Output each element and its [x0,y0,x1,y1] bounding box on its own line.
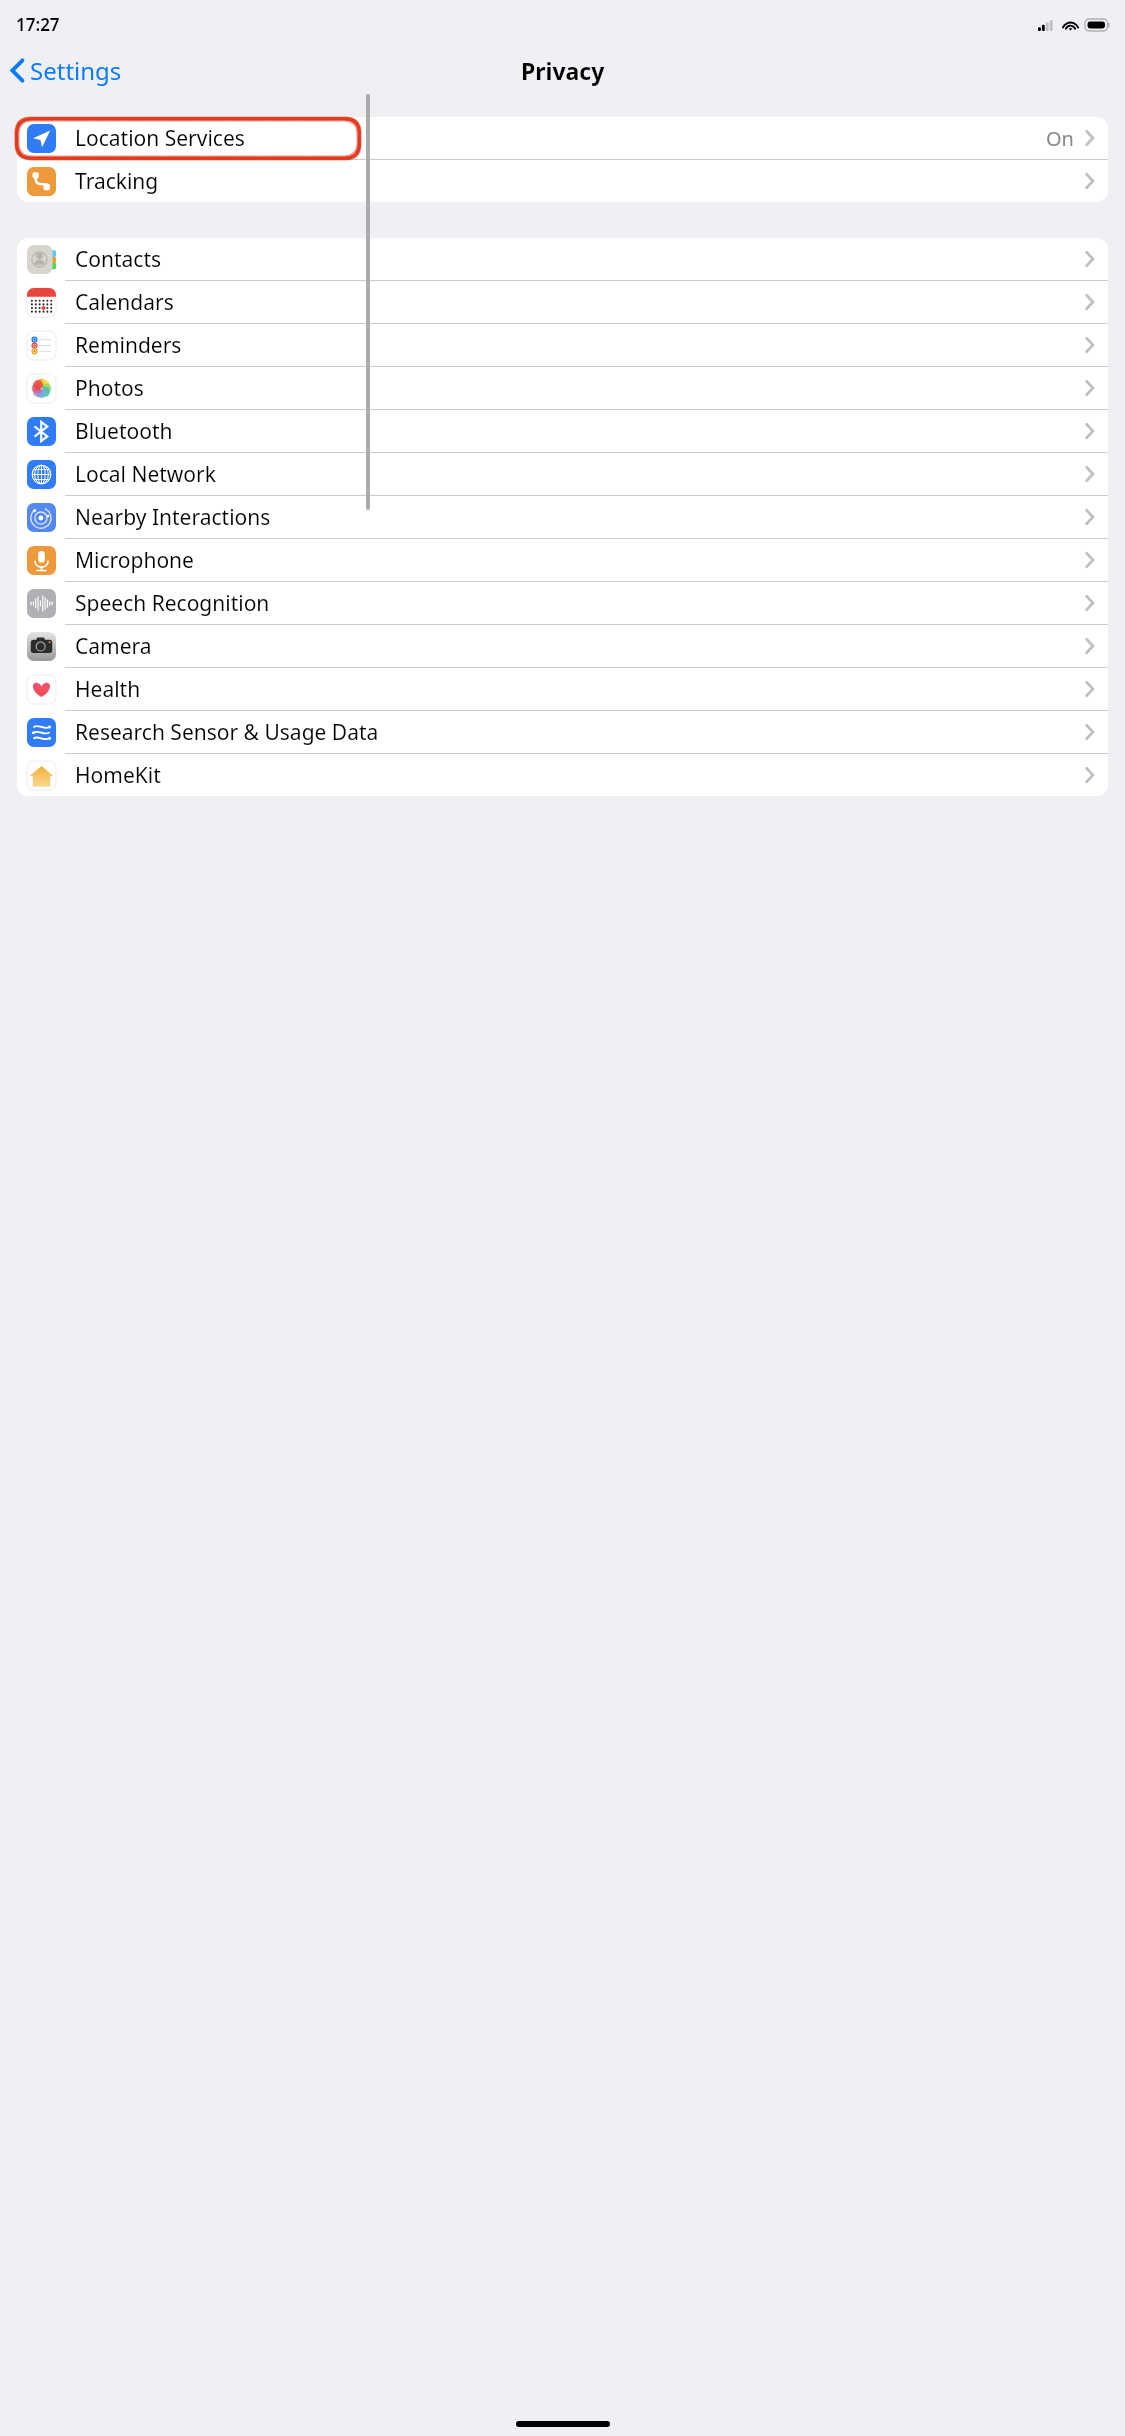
staticText: Contacts [75,245,1085,274]
staticText: Nearby Interactions [75,503,1085,532]
button[interactable]: Bluetooth [17,410,1108,452]
staticText: HomeKit [75,761,1085,790]
button[interactable]: Nearby Interactions [17,496,1108,538]
button[interactable]: Photos [17,367,1108,409]
button[interactable]: Location Services [17,117,1108,159]
staticText: Settings [30,54,122,87]
staticText: Calendars [75,288,1085,317]
staticText: Bluetooth [75,417,1085,446]
staticText: Microphone [75,546,1085,575]
staticText: Reminders [75,331,1085,360]
staticText: Camera [75,632,1085,661]
button[interactable]: Health [17,668,1108,710]
button[interactable]: Contacts [17,238,1108,280]
staticText: Health [75,675,1085,704]
staticText: 17:27 [16,13,60,36]
staticText: On [1046,125,1074,152]
staticText: Local Network [75,460,1085,489]
button[interactable]: Settings [5,50,128,91]
button[interactable]: Tracking [17,160,1108,202]
staticText: Speech Recognition [75,589,1085,618]
button[interactable]: Calendars [17,281,1108,323]
button[interactable]: Camera [17,625,1108,667]
staticText: Photos [75,374,1085,403]
staticText: Tracking [75,167,1085,196]
button[interactable]: Research Sensor & Usage Data [17,711,1108,753]
staticText: Privacy [521,55,605,86]
button[interactable]: HomeKit [17,754,1108,796]
staticText: Research Sensor & Usage Data [75,718,1085,747]
staticText: Location Services [75,124,1046,153]
button[interactable]: Speech Recognition [17,582,1108,624]
button[interactable]: Local Network [17,453,1108,495]
button[interactable]: Reminders [17,324,1108,366]
button[interactable]: Microphone [17,539,1108,581]
